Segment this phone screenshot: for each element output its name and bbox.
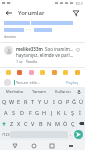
button[interactable]: G — [34, 107, 41, 118]
staticText: J — [51, 109, 53, 116]
button[interactable]: Ş — [69, 107, 76, 118]
staticText: Y — [38, 98, 42, 105]
staticText: Yorumlar — [18, 9, 45, 17]
button[interactable]: Voice input — [75, 88, 83, 96]
button[interactable]: Ğ — [71, 96, 78, 107]
staticText: L — [64, 109, 67, 116]
button[interactable]: N — [45, 118, 53, 129]
button[interactable]: Send — [74, 130, 83, 139]
button[interactable]: Z — [8, 118, 15, 129]
staticText: 10:1 — [75, 1, 83, 6]
button[interactable]: Emoji — [74, 69, 81, 76]
staticText: O — [58, 98, 63, 105]
staticText: E — [17, 98, 21, 105]
button[interactable]: F — [26, 107, 34, 118]
staticText: A — [4, 109, 8, 116]
button[interactable]: Recents — [47, 141, 56, 150]
button[interactable]: L — [62, 107, 69, 118]
staticText: devamı — [4, 34, 16, 39]
staticText: D — [20, 109, 25, 116]
button[interactable]: Emoji — [16, 69, 23, 76]
staticText: Kullanıcı — [55, 89, 71, 94]
staticText: W — [9, 98, 15, 105]
button[interactable]: Emoji — [51, 69, 58, 76]
button[interactable]: Filter — [71, 8, 81, 18]
button[interactable]: İ — [76, 107, 83, 118]
button[interactable]: H — [41, 107, 48, 118]
button[interactable]: melike333m — [0, 43, 85, 67]
staticText: Ç — [71, 120, 75, 127]
button[interactable]: J — [48, 107, 55, 118]
staticText: · · · — [26, 27, 32, 32]
button[interactable]: A — [2, 107, 10, 118]
staticText: R — [24, 98, 28, 105]
staticText: 1 sa — [16, 59, 23, 64]
button[interactable]: X — [15, 118, 22, 129]
button[interactable]: E — [15, 96, 22, 107]
staticText: H — [42, 109, 47, 116]
staticText: V — [31, 120, 35, 127]
staticText: Merhaba — [6, 89, 23, 94]
staticText: U — [44, 98, 49, 105]
button[interactable]: D — [18, 107, 26, 118]
button[interactable]: O — [57, 96, 64, 107]
button[interactable]: . — [68, 130, 74, 139]
staticText: X — [17, 120, 21, 127]
button[interactable]: Emoji — [39, 69, 46, 76]
staticText: melike333m — [16, 46, 43, 52]
button[interactable]: I — [50, 96, 57, 107]
staticText: T — [31, 98, 35, 105]
button[interactable]: W — [8, 96, 15, 107]
button[interactable]: P — [64, 96, 71, 107]
staticText: C — [24, 120, 28, 127]
button[interactable]: Ö — [61, 118, 69, 129]
button[interactable]: K — [55, 107, 62, 118]
button[interactable]: Shift — [0, 118, 8, 129]
staticText: I — [53, 98, 55, 105]
button[interactable]: T — [29, 96, 36, 107]
staticText: . — [70, 131, 72, 138]
button[interactable]: Ü — [78, 96, 85, 107]
button[interactable]: U — [43, 96, 50, 107]
staticText: hayranıyız, elimde ve parlıyor olan — [16, 52, 74, 58]
staticText: P — [66, 98, 70, 105]
button[interactable]: S — [10, 107, 18, 118]
button[interactable]: Y — [36, 96, 43, 107]
button[interactable]: Q — [0, 96, 8, 107]
staticText: M — [55, 120, 60, 127]
button[interactable]: Keyboard — [66, 141, 75, 150]
button[interactable]: Back — [4, 8, 14, 18]
staticText: N — [47, 120, 52, 127]
staticText: S — [12, 109, 16, 116]
staticText: Ş — [71, 109, 75, 116]
staticText: K — [57, 109, 61, 116]
staticText: Q — [2, 98, 7, 105]
button[interactable]: Emoji — [28, 69, 35, 76]
button[interactable]: Ç — [69, 118, 77, 129]
staticText: Yanıtla — [26, 59, 38, 64]
button[interactable]: R — [22, 96, 29, 107]
button[interactable]: Back — [10, 141, 19, 150]
button[interactable]: Merhaba — [2, 87, 27, 96]
staticText: Ğ — [72, 98, 77, 105]
button[interactable]: Symbols — [2, 130, 10, 139]
staticText: Soo inanılmaz ampul — [45, 46, 74, 52]
button[interactable]: Backspace — [77, 118, 85, 129]
button[interactable]: Emoji — [62, 69, 69, 76]
button[interactable]: Home — [29, 141, 38, 150]
staticText: Z — [10, 120, 14, 127]
button[interactable]: Tamam — [27, 87, 51, 96]
staticText: ?123 — [2, 132, 10, 137]
button[interactable]: Emoji — [5, 69, 12, 76]
button[interactable]: C — [22, 118, 29, 129]
button[interactable]: M — [53, 118, 61, 129]
button[interactable]: Paylaş — [64, 80, 81, 85]
button[interactable]: B — [37, 118, 45, 129]
staticText: Tamam — [32, 89, 46, 94]
button[interactable]: Like — [74, 46, 81, 53]
staticText: G — [35, 109, 40, 116]
staticText: Yorum ekle... — [16, 80, 41, 85]
button[interactable]: V — [29, 118, 37, 129]
button[interactable]: Kullanıcı — [51, 87, 75, 96]
